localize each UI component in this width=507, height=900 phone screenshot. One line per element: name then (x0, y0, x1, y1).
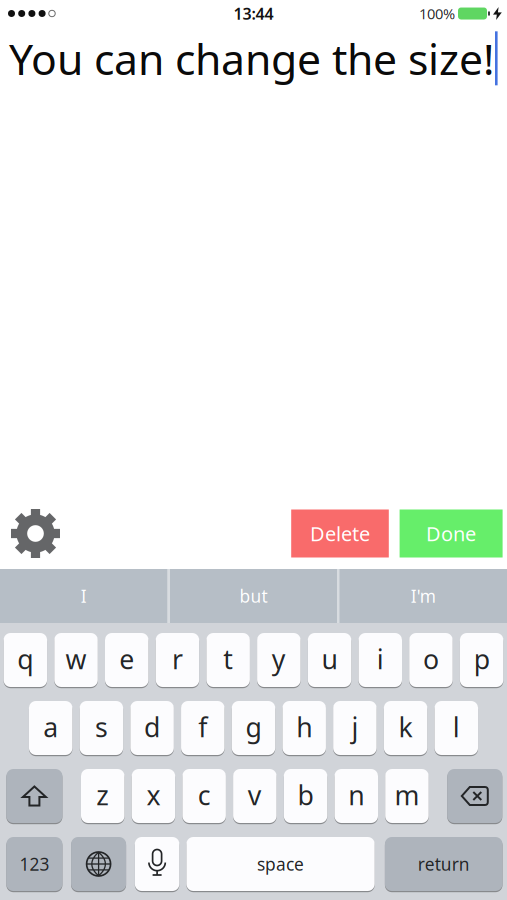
button[interactable]: Next keyboard (71, 837, 126, 891)
button[interactable]: c (182, 769, 226, 823)
staticText: u (321, 641, 337, 677)
button[interactable]: i (358, 633, 402, 687)
button[interactable]: a (29, 701, 72, 755)
staticText: i (377, 641, 384, 677)
staticText: m (394, 777, 419, 813)
button[interactable]: Shift (6, 769, 62, 823)
staticText: 13:44 (233, 3, 273, 24)
button[interactable]: d (130, 701, 174, 755)
button[interactable]: b (284, 769, 327, 823)
staticText: return (418, 852, 470, 875)
button[interactable]: u (308, 633, 351, 687)
button[interactable]: e (105, 633, 148, 687)
staticText: o (423, 641, 439, 677)
button[interactable]: f (181, 701, 225, 755)
staticText: Delete (310, 520, 370, 547)
button[interactable]: h (282, 701, 326, 755)
button[interactable]: m (385, 769, 429, 823)
staticText: 123 (19, 852, 49, 875)
button[interactable]: I'm (339, 569, 507, 623)
staticText: e (119, 641, 134, 677)
staticText: 100% (419, 4, 455, 23)
button[interactable]: but (170, 569, 337, 623)
button[interactable]: w (54, 633, 98, 687)
staticText: d (144, 709, 160, 745)
staticText: s (95, 709, 108, 745)
staticText: z (96, 777, 109, 813)
staticText: You can change the size! (9, 30, 494, 87)
button[interactable]: x (132, 769, 175, 823)
button[interactable]: y (257, 633, 301, 687)
staticText: y (272, 641, 286, 677)
staticText: r (172, 641, 183, 677)
staticText: but (239, 584, 267, 607)
staticText: n (348, 777, 364, 813)
button[interactable]: Delete (291, 509, 389, 557)
staticText: Done (426, 520, 476, 547)
staticText: g (245, 709, 261, 745)
staticText: I'm (411, 584, 436, 607)
button[interactable]: g (232, 701, 275, 755)
button[interactable]: j (333, 701, 377, 755)
staticText: x (146, 777, 160, 813)
button[interactable]: return (385, 837, 502, 891)
button[interactable]: I (0, 569, 167, 623)
staticText: f (198, 709, 207, 745)
staticText: q (17, 641, 33, 677)
button[interactable]: n (334, 769, 378, 823)
staticText: p (474, 641, 490, 677)
button[interactable]: l (434, 701, 478, 755)
button[interactable]: Numbers (6, 837, 62, 891)
staticText: I (81, 584, 87, 607)
staticText: l (453, 709, 460, 745)
button[interactable]: v (233, 769, 277, 823)
button[interactable]: t (206, 633, 250, 687)
staticText: w (65, 641, 86, 677)
staticText: j (351, 709, 358, 745)
staticText: v (248, 777, 262, 813)
button[interactable]: Dictation (135, 837, 179, 891)
button[interactable]: s (80, 701, 123, 755)
staticText: t (223, 641, 233, 677)
button[interactable]: p (460, 633, 503, 687)
button[interactable]: Delete (447, 769, 502, 823)
staticText: k (399, 709, 413, 745)
button[interactable]: q (4, 633, 47, 687)
button[interactable]: k (384, 701, 427, 755)
button[interactable]: Done (400, 509, 503, 557)
button[interactable]: o (409, 633, 453, 687)
staticText: space (257, 852, 304, 875)
staticText: c (198, 777, 211, 813)
button[interactable]: space (186, 837, 375, 891)
button[interactable]: r (156, 633, 199, 687)
staticText: b (298, 777, 314, 813)
button[interactable]: Settings (11, 509, 60, 558)
staticText: h (296, 709, 312, 745)
staticText: a (43, 709, 58, 745)
button[interactable]: z (81, 769, 124, 823)
